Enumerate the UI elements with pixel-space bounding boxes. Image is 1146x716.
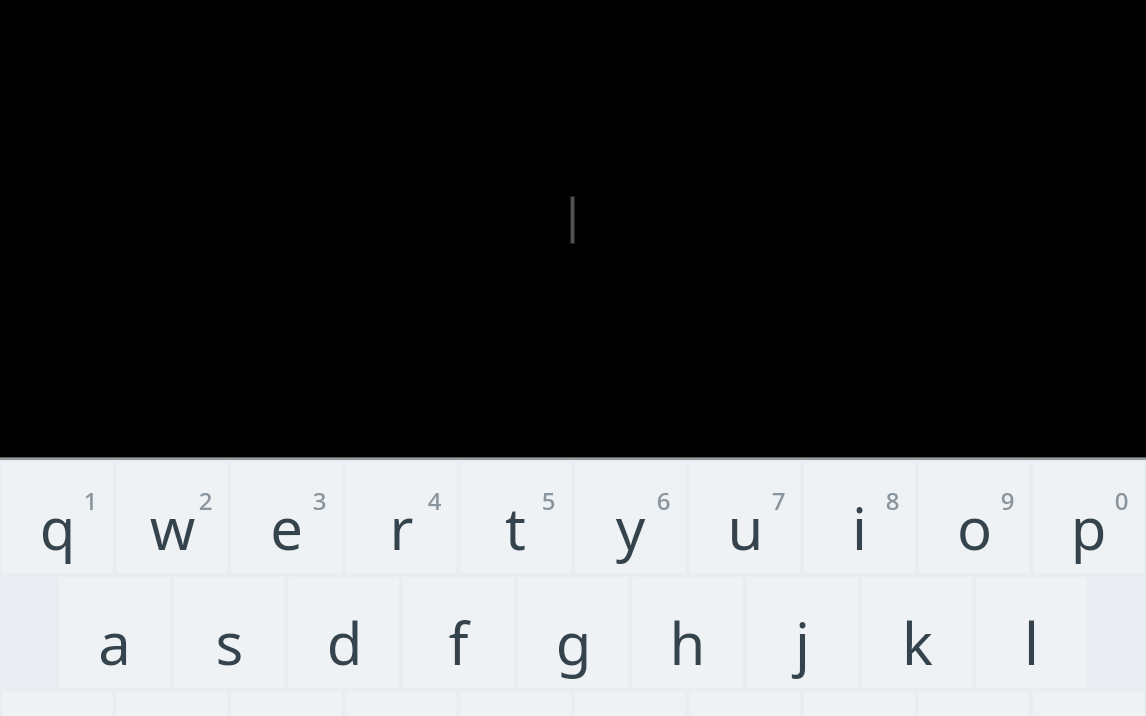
staticText: i: [802, 488, 917, 567]
button[interactable]: s: [172, 575, 287, 690]
staticText: o: [917, 488, 1032, 567]
button[interactable]: i: [802, 460, 917, 575]
button[interactable]: t: [458, 460, 573, 575]
staticText: 8: [873, 484, 912, 517]
button[interactable]: d: [287, 575, 402, 690]
staticText: 9: [988, 484, 1027, 517]
button[interactable]: g: [516, 575, 631, 690]
staticText: y: [573, 488, 688, 567]
button[interactable]: f: [401, 575, 516, 690]
staticText: 4: [415, 484, 454, 517]
staticText: r: [344, 488, 459, 567]
button[interactable]: [0, 0, 1146, 460]
staticText: 3: [300, 484, 339, 517]
staticText: d: [287, 603, 402, 682]
staticText: s: [172, 603, 287, 682]
staticText: j: [745, 603, 860, 682]
button[interactable]: k: [860, 575, 975, 690]
staticText: 5: [529, 484, 568, 517]
staticText: t: [458, 488, 573, 567]
button[interactable]: j: [745, 575, 860, 690]
button[interactable]: p: [1031, 460, 1146, 575]
staticText: w: [115, 488, 230, 567]
staticText: 7: [759, 484, 798, 517]
staticText: q: [0, 488, 115, 567]
staticText: f: [401, 603, 516, 682]
staticText: p: [1031, 488, 1146, 567]
button[interactable]: h: [630, 575, 745, 690]
button[interactable]: e: [229, 460, 344, 575]
staticText: g: [516, 603, 631, 682]
staticText: 0: [1102, 484, 1141, 517]
button[interactable]: y: [573, 460, 688, 575]
button[interactable]: w: [115, 460, 230, 575]
staticText: 2: [186, 484, 225, 517]
staticText: e: [229, 488, 344, 567]
button[interactable]: u: [688, 460, 803, 575]
staticText: a: [57, 603, 172, 682]
staticText: h: [630, 603, 745, 682]
staticText: u: [688, 488, 803, 567]
staticText: k: [860, 603, 975, 682]
button[interactable]: l: [974, 575, 1089, 690]
button[interactable]: r: [344, 460, 459, 575]
button[interactable]: o: [917, 460, 1032, 575]
staticText: l: [974, 603, 1089, 682]
button[interactable]: q: [0, 460, 115, 575]
staticText: 6: [644, 484, 683, 517]
button[interactable]: a: [57, 575, 172, 690]
staticText: 1: [71, 484, 110, 517]
